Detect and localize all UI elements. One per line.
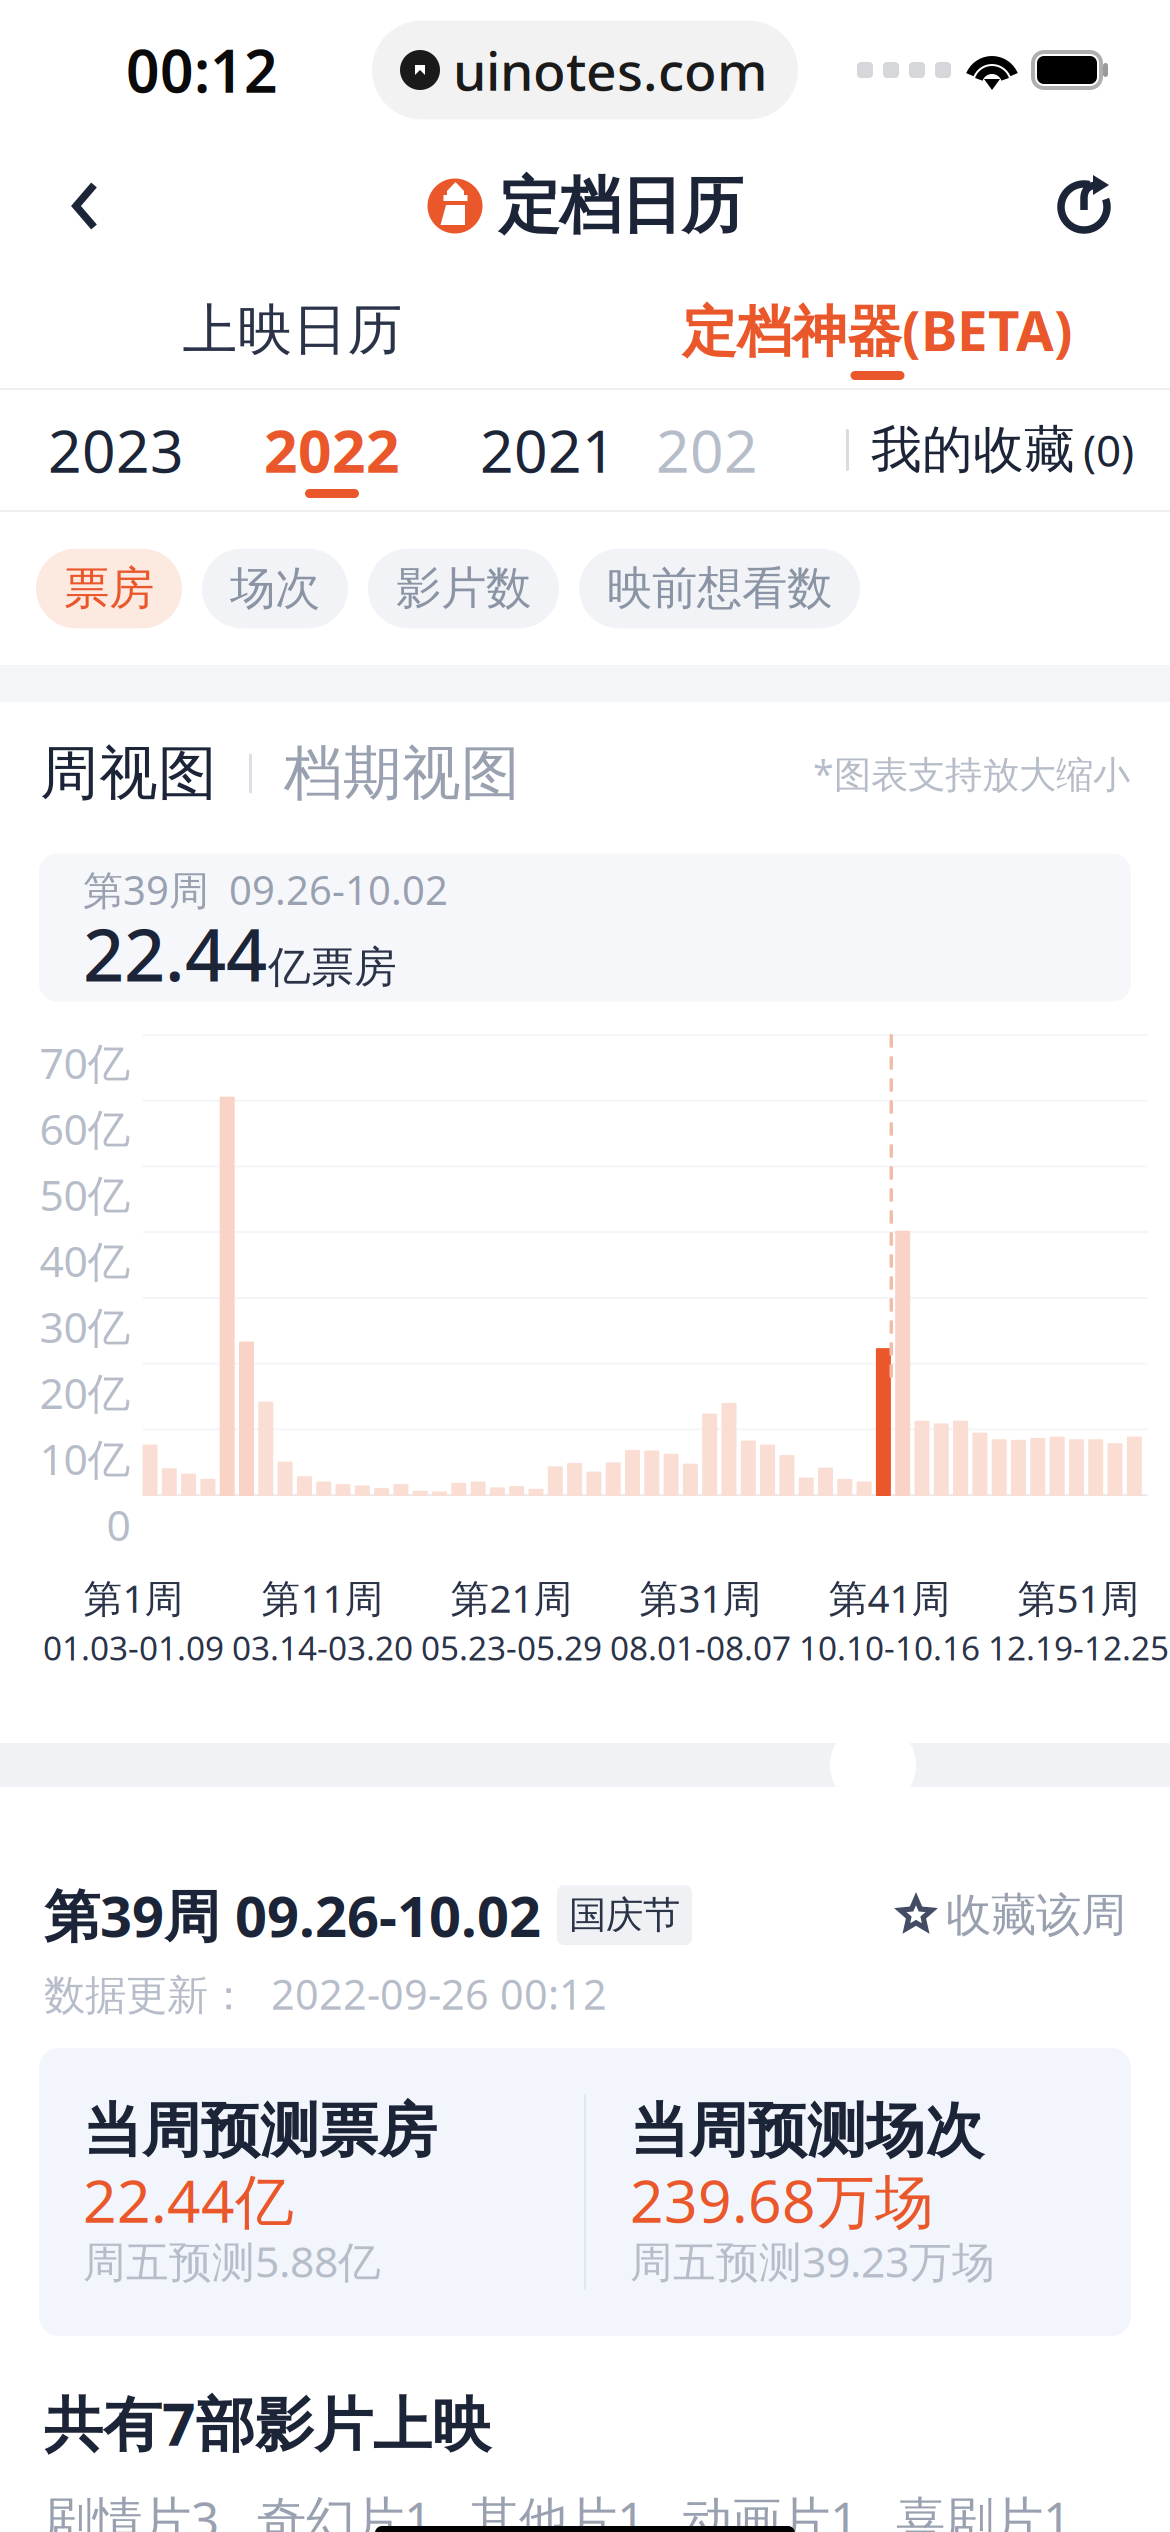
staticText: 2021	[480, 411, 616, 489]
staticText: 奇幻片1	[257, 2486, 432, 2532]
staticText: 收藏该周	[946, 1887, 1126, 1943]
staticText: 数据更新： 2022-09-26 00:12	[44, 1966, 607, 2021]
staticText: 第31周	[639, 1572, 761, 1623]
button[interactable]: 周视图	[40, 737, 217, 810]
staticText: 10.10-10.16	[799, 1625, 980, 1670]
staticText: 第39周 09.26-10.02	[44, 1878, 541, 1952]
button[interactable]: Back	[0, 140, 170, 272]
staticText: 国庆节	[569, 1892, 680, 1938]
staticText: 第1周	[83, 1572, 183, 1623]
staticText: 20亿	[39, 1364, 130, 1421]
staticText: 其他片1	[470, 2486, 645, 2532]
button[interactable]: 影片数	[368, 549, 559, 628]
staticText: 周五预测5.88亿	[83, 2233, 381, 2289]
staticText: 亿票房	[268, 941, 397, 993]
staticText: 定档日历	[498, 168, 742, 244]
staticText: 定档神器(BETA)	[682, 294, 1073, 366]
staticText: 22.44	[83, 906, 267, 1001]
staticText: 票房	[64, 561, 154, 616]
staticText: uinotes.com	[453, 35, 768, 105]
staticText: 05.23-05.29	[421, 1625, 602, 1670]
button[interactable]: 档期视图	[284, 737, 520, 810]
staticText: 动画片1	[683, 2486, 858, 2532]
staticText: 2022	[264, 411, 400, 489]
staticText: 60亿	[39, 1100, 130, 1157]
staticText: 30亿	[39, 1298, 130, 1355]
staticText: 第11周	[261, 1572, 383, 1623]
staticText: 当周预测场次	[630, 2095, 984, 2167]
staticText: 当周预测票房	[83, 2095, 437, 2167]
staticText: 40亿	[39, 1232, 130, 1289]
staticText: 档期视图	[284, 737, 520, 810]
staticText: 第41周	[828, 1572, 950, 1623]
button[interactable]: 上映日历	[0, 272, 585, 388]
staticText: 70亿	[39, 1034, 130, 1091]
staticText: 202	[656, 411, 758, 489]
button[interactable]: 202	[656, 390, 846, 510]
staticText: 周五预测39.23万场	[630, 2233, 995, 2289]
staticText: 剧情片3	[44, 2486, 219, 2532]
button[interactable]: 2021	[440, 390, 656, 510]
staticText: 第51周	[1017, 1572, 1139, 1623]
staticText: 场次	[230, 561, 320, 616]
button[interactable]: Share	[1000, 140, 1170, 272]
staticText: 50亿	[39, 1166, 130, 1223]
staticText: 第21周	[450, 1572, 572, 1623]
staticText: 第39周 09.26-10.02	[83, 863, 448, 916]
staticText: 22.44亿	[83, 2161, 294, 2239]
button[interactable]: 映前想看数	[579, 549, 860, 628]
staticText: 映前想看数	[607, 561, 832, 616]
staticText: 08.01-08.07	[610, 1625, 791, 1670]
button[interactable]: 2022	[224, 390, 440, 510]
button[interactable]: 2023	[8, 390, 224, 510]
staticText: 10亿	[39, 1430, 130, 1487]
staticText: 03.14-03.20	[232, 1625, 413, 1670]
staticText: (0)	[1083, 421, 1134, 479]
button[interactable]: 场次	[202, 549, 348, 628]
staticText: 上映日历	[182, 296, 402, 363]
button[interactable]: 收藏该周	[896, 1887, 1126, 1943]
staticText: 0	[106, 1496, 130, 1553]
staticText: 01.03-01.09	[43, 1625, 224, 1670]
staticText: 影片数	[396, 561, 531, 616]
button[interactable]: 我的收藏	[849, 390, 1170, 510]
staticText: 我的收藏	[871, 419, 1075, 481]
staticText: 共有7部影片上映	[44, 2384, 491, 2462]
staticText: 喜剧片1	[896, 2486, 1071, 2532]
staticText: 2023	[48, 411, 184, 489]
staticText: 00:12	[126, 31, 278, 109]
staticText: 239.68万场	[630, 2161, 934, 2239]
button[interactable]: 票房	[36, 549, 182, 628]
button[interactable]: 定档神器(BETA)	[585, 272, 1170, 388]
staticText: *图表支持放大缩小	[813, 749, 1130, 798]
staticText: 12.19-12.25	[988, 1625, 1169, 1670]
staticText: 周视图	[40, 737, 217, 810]
